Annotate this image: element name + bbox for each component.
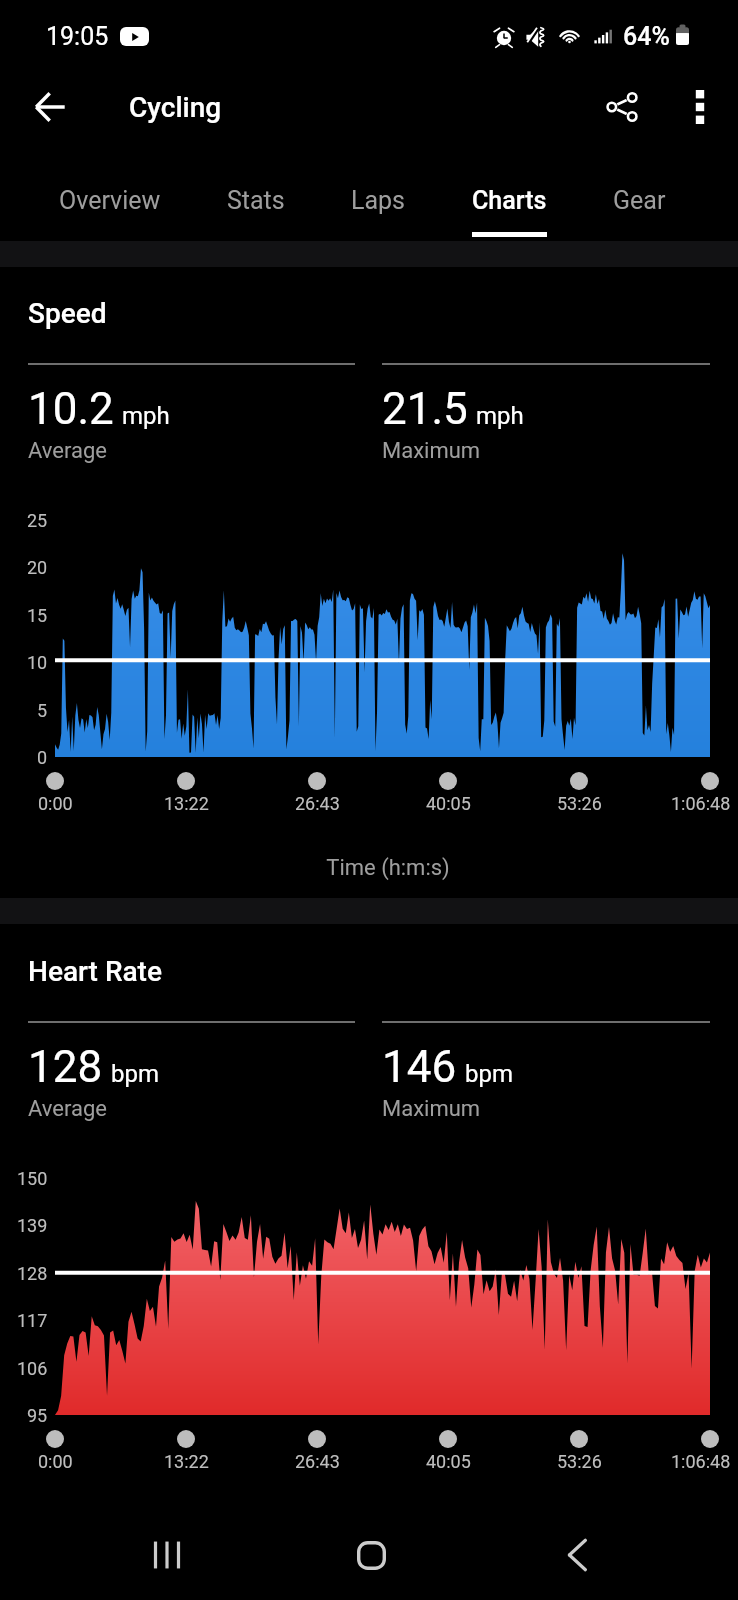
staticText: 21.5 xyxy=(382,383,468,435)
staticText: Laps xyxy=(351,186,406,215)
staticText: 1:06:48 xyxy=(671,793,731,814)
staticText: mph xyxy=(122,402,170,430)
staticText: Average xyxy=(28,1096,108,1122)
staticText: 106 xyxy=(17,1358,48,1379)
staticText: Maximum xyxy=(382,1096,481,1122)
staticText: 20 xyxy=(27,557,48,578)
staticText: 26:43 xyxy=(295,793,340,814)
staticText: 53:26 xyxy=(557,1451,602,1472)
staticText: 146 xyxy=(382,1041,457,1093)
button[interactable]: Back xyxy=(537,1515,617,1595)
staticText: mph xyxy=(476,402,524,430)
staticText: 40:05 xyxy=(426,1451,471,1472)
button[interactable]: Home xyxy=(331,1515,411,1595)
button[interactable]: Navigate up xyxy=(20,77,80,137)
staticText: 150 xyxy=(17,1168,48,1189)
staticText: 26:43 xyxy=(295,1451,340,1472)
staticText: 13:22 xyxy=(164,793,209,814)
button[interactable]: Stats xyxy=(194,152,318,241)
staticText: Gear xyxy=(613,186,666,215)
staticText: 64% xyxy=(623,22,670,51)
staticText: 0:00 xyxy=(38,1451,73,1472)
button[interactable]: Laps xyxy=(318,152,439,241)
staticText: 40:05 xyxy=(426,793,471,814)
staticText: 0 xyxy=(37,747,48,768)
staticText: 19:05 xyxy=(46,22,109,51)
staticText: Stats xyxy=(227,186,285,215)
button[interactable]: Gear xyxy=(580,152,699,241)
staticText: bpm xyxy=(111,1060,159,1088)
staticText: 25 xyxy=(27,510,48,531)
staticText: Heart Rate xyxy=(28,955,162,988)
staticText: 10 xyxy=(27,652,48,673)
staticText: 53:26 xyxy=(557,793,602,814)
staticText: 117 xyxy=(17,1310,48,1331)
staticText: Cycling xyxy=(129,91,222,124)
staticText: 5 xyxy=(37,700,48,721)
staticText: 10.2 xyxy=(28,383,114,435)
staticText: Maximum xyxy=(382,438,481,464)
button[interactable]: Recent apps xyxy=(127,1515,207,1595)
staticText: 1:06:48 xyxy=(671,1451,731,1472)
staticText: Overview xyxy=(59,186,161,215)
staticText: 15 xyxy=(27,605,48,626)
staticText: 13:22 xyxy=(164,1451,209,1472)
staticText: 128 xyxy=(28,1041,103,1093)
staticText: Speed xyxy=(28,297,107,330)
staticText: Charts xyxy=(472,186,547,215)
button[interactable]: More options xyxy=(670,77,730,137)
staticText: 95 xyxy=(27,1405,48,1426)
staticText: bpm xyxy=(465,1060,513,1088)
staticText: Average xyxy=(28,438,108,464)
staticText: 139 xyxy=(17,1215,48,1236)
staticText: 0:00 xyxy=(38,793,73,814)
staticText: 128 xyxy=(17,1263,48,1284)
button[interactable]: Share xyxy=(592,77,652,137)
button[interactable]: Charts xyxy=(439,152,580,241)
staticText: Time (h:m:s) xyxy=(19,855,738,881)
button[interactable]: Overview xyxy=(26,152,194,241)
